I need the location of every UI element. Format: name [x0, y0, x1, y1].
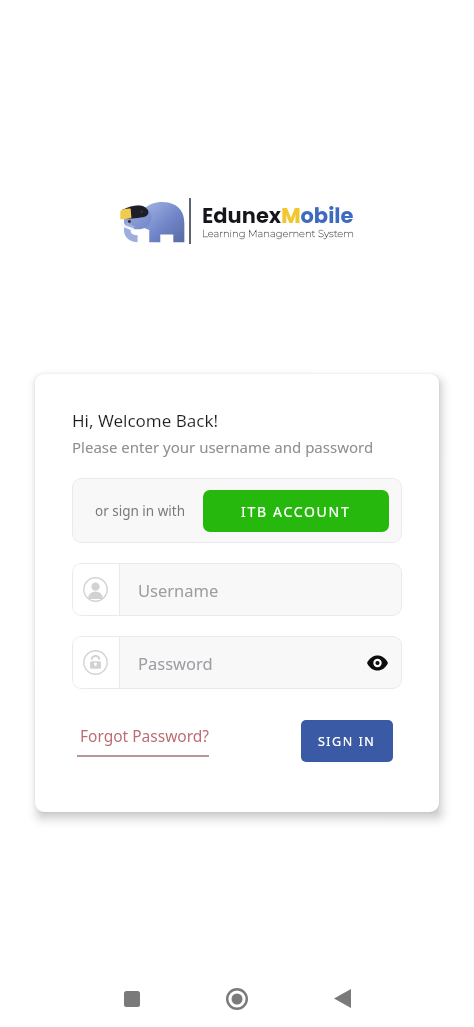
button[interactable]: Recent apps	[101, 970, 163, 1027]
button[interactable]: SIGN IN	[301, 720, 393, 762]
staticText: Learning Management System	[202, 227, 354, 239]
staticText: Please enter your username and password	[72, 437, 374, 457]
button[interactable]: ITB ACCOUNT	[203, 490, 389, 532]
staticText: or sign in with	[95, 502, 186, 520]
staticText: Password	[138, 652, 213, 674]
button[interactable]: Username	[72, 563, 402, 616]
staticText: ITB ACCOUNT	[241, 502, 351, 521]
staticText: EdunexMobile	[202, 201, 354, 230]
staticText: Username	[138, 579, 219, 601]
staticText: SIGN IN	[318, 733, 376, 750]
button[interactable]: Back	[311, 970, 373, 1027]
staticText: Hi, Welcome Back!	[72, 409, 219, 432]
button[interactable]: Show password	[357, 643, 397, 683]
button[interactable]: Forgot Password?	[77, 725, 210, 757]
button[interactable]: Home	[206, 970, 268, 1027]
staticText: Forgot Password?	[80, 725, 210, 746]
button[interactable]: Password	[72, 636, 402, 689]
